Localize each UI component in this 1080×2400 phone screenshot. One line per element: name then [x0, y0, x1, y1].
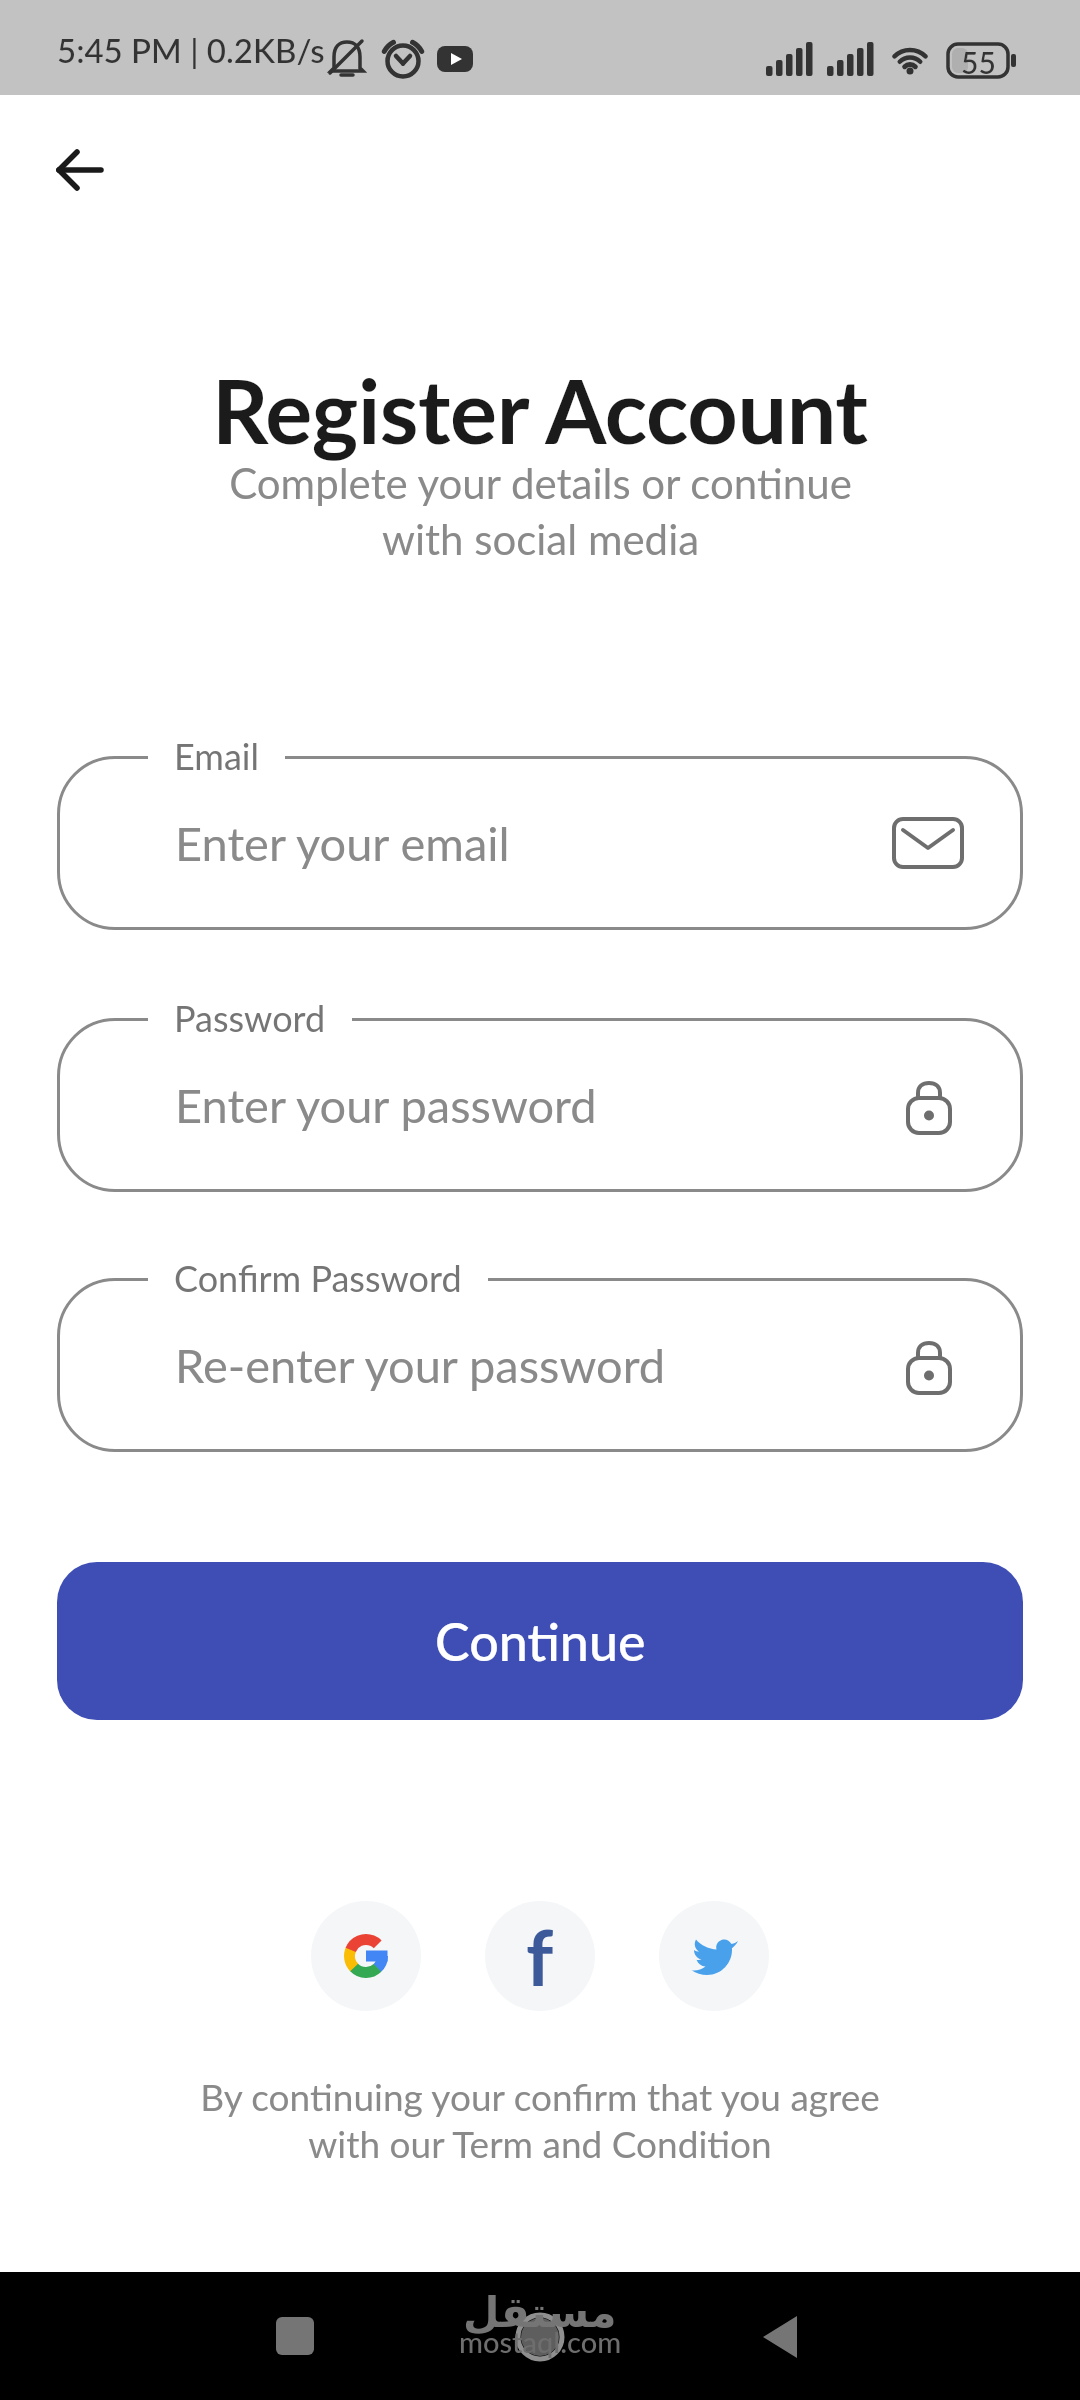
- staticText: 55: [961, 44, 996, 77]
- button[interactable]: [57, 1018, 1023, 1192]
- button[interactable]: [57, 1278, 1023, 1452]
- button[interactable]: [490, 2286, 590, 2386]
- button[interactable]: [311, 1901, 421, 2011]
- staticText: Enter your email: [175, 815, 510, 871]
- staticText: مستقل: [463, 2288, 617, 2337]
- button[interactable]: [40, 133, 114, 207]
- button[interactable]: Continue: [57, 1562, 1023, 1720]
- staticText: f: [526, 1911, 554, 2002]
- staticText: By continuing your confirm that you agre…: [200, 2074, 880, 2166]
- staticText: Password: [174, 996, 326, 1039]
- staticText: Enter your password: [175, 1077, 597, 1133]
- staticText: Confirm Password: [174, 1256, 462, 1299]
- staticText: Register Account: [212, 357, 868, 463]
- button[interactable]: [659, 1901, 769, 2011]
- staticText: 5:45 PM | 0.2KB/s: [57, 30, 325, 70]
- button[interactable]: [735, 2286, 835, 2386]
- staticText: mostaql.com: [459, 2324, 622, 2359]
- staticText: Continue: [435, 1610, 646, 1672]
- button[interactable]: [57, 756, 1023, 930]
- staticText: Re-enter your password: [175, 1337, 666, 1393]
- button[interactable]: [245, 2286, 345, 2386]
- staticText: Complete your details or continue with s…: [229, 458, 852, 564]
- staticText: Email: [174, 734, 259, 777]
- button[interactable]: f: [485, 1901, 595, 2011]
